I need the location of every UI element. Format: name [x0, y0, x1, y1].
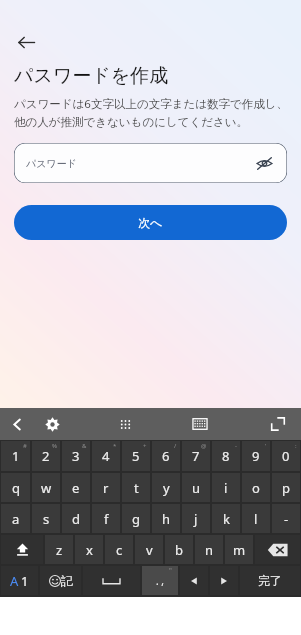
staticText: j — [194, 510, 198, 528]
button[interactable]: - — [272, 504, 300, 533]
button[interactable]: v — [135, 535, 163, 564]
button[interactable]: 9 — [242, 441, 270, 471]
staticText: : — [295, 442, 297, 450]
button[interactable]: l — [242, 504, 270, 533]
staticText: y — [163, 479, 170, 497]
button[interactable]: t — [122, 473, 150, 502]
staticText: 記 — [61, 573, 73, 588]
button[interactable]: z — [45, 535, 73, 564]
button[interactable]: q — [1, 473, 30, 502]
button[interactable]: j — [182, 504, 210, 533]
button[interactable]: f — [92, 504, 120, 533]
button[interactable]: i — [212, 473, 240, 502]
staticText: i — [224, 479, 228, 497]
staticText: h — [162, 510, 171, 528]
button[interactable]: 0 — [272, 441, 300, 471]
staticText: パスワード — [26, 157, 77, 170]
staticText: + — [143, 442, 147, 450]
button[interactable]: Back — [10, 26, 42, 58]
button[interactable]: g — [122, 504, 150, 533]
staticText: . , — [156, 574, 164, 588]
staticText: - — [284, 510, 289, 528]
staticText: b — [175, 541, 183, 559]
staticText: 8 — [222, 447, 230, 465]
staticText: 3 — [72, 447, 80, 465]
button[interactable]: 7 — [182, 441, 210, 471]
staticText: k — [223, 510, 230, 528]
button[interactable]: m — [225, 535, 253, 564]
staticText: 5 — [132, 447, 140, 465]
button[interactable]: 完了 — [240, 566, 300, 595]
staticText: c — [116, 541, 123, 559]
staticText: u — [192, 479, 201, 497]
staticText: 1 — [12, 447, 20, 465]
button[interactable]: Back — [0, 408, 34, 440]
button[interactable]: Emoji and symbols — [40, 566, 81, 595]
button[interactable]: 1 — [1, 441, 30, 471]
button[interactable]: 次へ — [14, 205, 287, 240]
button[interactable]: 4 — [92, 441, 120, 471]
staticText: 7 — [192, 447, 200, 465]
staticText: e — [72, 479, 80, 497]
button[interactable]: b — [165, 535, 193, 564]
staticText: d — [72, 510, 80, 528]
button[interactable]: k — [212, 504, 240, 533]
button[interactable]: Space — [83, 566, 140, 595]
button[interactable]: x — [75, 535, 103, 564]
staticText: t — [134, 479, 139, 497]
staticText: 4 — [102, 447, 110, 465]
button[interactable]: Move cursor left — [180, 566, 208, 595]
staticText: v — [146, 541, 153, 559]
button[interactable]: o — [242, 473, 270, 502]
button[interactable]: s — [32, 504, 60, 533]
button[interactable]: p — [272, 473, 300, 502]
staticText: 次へ — [138, 215, 163, 230]
button[interactable]: 2 — [32, 441, 60, 471]
button[interactable]: Show password — [251, 150, 277, 176]
staticText: * — [113, 442, 117, 450]
button[interactable]: r — [92, 473, 120, 502]
button[interactable]: 8 — [212, 441, 240, 471]
staticText: " — [169, 566, 172, 576]
staticText: n — [205, 541, 214, 559]
staticText: 6 — [162, 447, 170, 465]
button[interactable]: 5 — [122, 441, 150, 471]
button[interactable]: e — [62, 473, 90, 502]
button[interactable]: Shift — [1, 535, 43, 564]
staticText: / — [174, 442, 177, 450]
button[interactable]: 6 — [152, 441, 180, 471]
staticText: q — [12, 479, 20, 497]
button[interactable]: Switch keyboard — [180, 408, 220, 440]
staticText: m — [233, 541, 246, 559]
staticText: ' — [265, 442, 267, 450]
button[interactable]: Apps — [105, 408, 145, 440]
staticText: g — [132, 510, 140, 528]
button[interactable]: w — [32, 473, 60, 502]
button[interactable]: Resize keyboard — [255, 408, 301, 440]
staticText: z — [56, 541, 63, 559]
staticText: r — [103, 479, 109, 497]
button[interactable]: n — [195, 535, 223, 564]
staticText: A — [10, 572, 19, 590]
button[interactable]: a — [1, 504, 30, 533]
staticText: - — [235, 442, 237, 450]
button[interactable]: パスワード — [14, 143, 287, 183]
button[interactable]: d — [62, 504, 90, 533]
staticText: @ — [201, 442, 207, 450]
button[interactable]: Move cursor right — [210, 566, 238, 595]
button[interactable]: h — [152, 504, 180, 533]
button[interactable]: Backspace — [255, 535, 300, 564]
button[interactable]: . , — [142, 566, 178, 595]
staticText: x — [86, 541, 93, 559]
button[interactable]: A — [1, 566, 38, 595]
button[interactable]: 3 — [62, 441, 90, 471]
staticText: パスワードを作成 — [14, 64, 169, 88]
staticText: f — [104, 510, 109, 528]
button[interactable]: y — [152, 473, 180, 502]
button[interactable]: Keyboard settings — [34, 408, 70, 440]
staticText: パスワードは6文字以上の文字または数字で作成し、他の人が推測できないものにしてく… — [14, 96, 289, 129]
button[interactable]: c — [105, 535, 133, 564]
staticText: p — [282, 479, 290, 497]
button[interactable]: u — [182, 473, 210, 502]
staticText: 2 — [42, 447, 50, 465]
